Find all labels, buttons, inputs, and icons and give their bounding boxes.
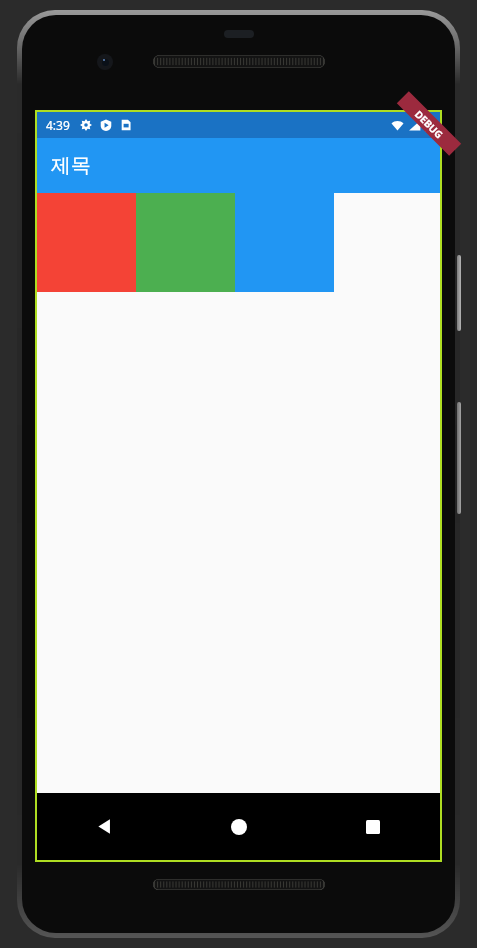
staticText: 제목 [51, 153, 91, 178]
button[interactable]: Recent apps [306, 793, 440, 860]
staticText: 4:39 [46, 117, 70, 133]
staticText: DEBUG [412, 107, 446, 141]
button[interactable]: Back [37, 793, 172, 860]
other: Debug banner [366, 112, 440, 186]
button[interactable]: Home [172, 793, 306, 860]
